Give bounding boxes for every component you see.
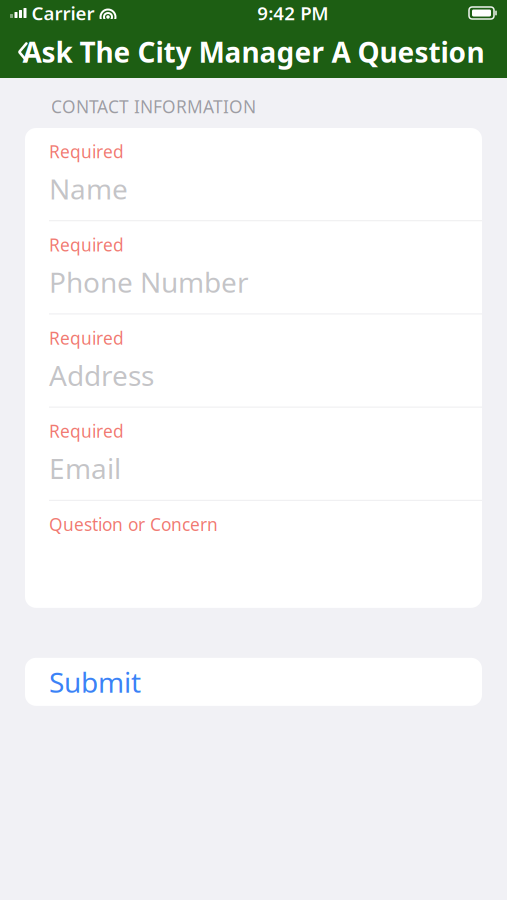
staticText: Phone Number — [49, 263, 249, 300]
button[interactable]: Name — [49, 163, 482, 220]
button[interactable]: Submit — [25, 658, 482, 706]
staticText: Required — [49, 233, 124, 256]
button[interactable]: Email — [49, 443, 482, 500]
staticText: Address — [49, 356, 154, 394]
staticText: Question or Concern — [49, 513, 218, 536]
staticText: Required — [49, 420, 124, 443]
button[interactable]: Phone Number — [49, 256, 482, 313]
button[interactable]: Address — [49, 349, 482, 407]
staticText: Required — [49, 326, 124, 349]
staticText: Required — [49, 140, 124, 163]
staticText: Ask The City Manager A Question — [22, 33, 484, 71]
staticText: Name — [49, 170, 128, 207]
staticText: Submit — [49, 663, 141, 700]
staticText: Carrier — [31, 1, 94, 25]
staticText: CONTACT INFORMATION — [51, 95, 256, 118]
button[interactable]: Back — [0, 31, 46, 73]
staticText: Email — [49, 450, 121, 487]
staticText: 9:42 PM — [257, 1, 328, 25]
